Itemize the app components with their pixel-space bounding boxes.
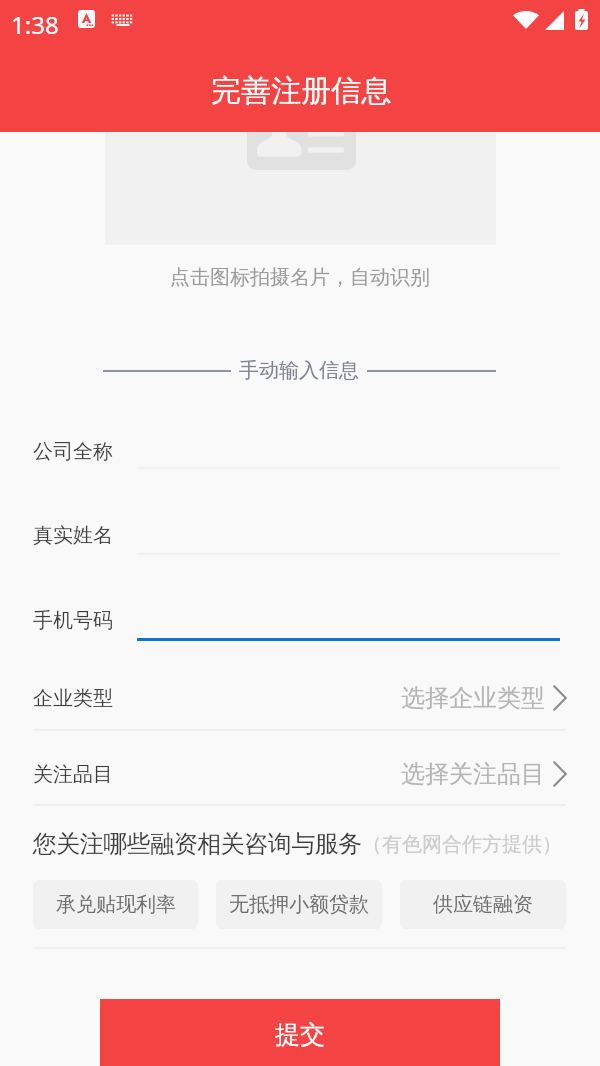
staticText: 承兑贴现利率 bbox=[56, 892, 176, 917]
other: WiFi bbox=[513, 10, 539, 29]
staticText: 完善注册信息 bbox=[211, 72, 391, 110]
other: Keyboard bbox=[111, 14, 134, 26]
button[interactable]: 提交 bbox=[100, 999, 500, 1066]
staticText: 公司全称 bbox=[33, 439, 113, 464]
button[interactable]: 拍摄名片 bbox=[105, 100, 496, 245]
button[interactable]: 企业类型 bbox=[0, 663, 600, 733]
staticText: 您关注哪些融资相关咨询与服务 bbox=[33, 829, 362, 859]
staticText: 选择关注品目 bbox=[401, 759, 545, 789]
staticText: 选择企业类型 bbox=[401, 683, 545, 713]
button[interactable]: 关注品目 bbox=[0, 739, 600, 809]
button[interactable]: 供应链融资 bbox=[400, 880, 566, 929]
staticText: （有色网合作方提供） bbox=[362, 832, 562, 857]
staticText: 点击图标拍摄名片，自动识别 bbox=[170, 265, 430, 290]
staticText: 手机号码 bbox=[33, 608, 113, 633]
button[interactable]: 公司全称 bbox=[33, 425, 560, 477]
staticText: 提交 bbox=[275, 1019, 325, 1050]
button[interactable]: 手机号码 bbox=[33, 596, 560, 648]
other: Input method bbox=[78, 10, 95, 28]
staticText: 手动输入信息 bbox=[239, 358, 359, 383]
other: Battery charging bbox=[575, 9, 588, 30]
button[interactable]: 承兑贴现利率 bbox=[33, 880, 198, 929]
staticText: 1:38 bbox=[11, 8, 59, 41]
other: Signal bbox=[545, 11, 564, 30]
staticText: 关注品目 bbox=[33, 762, 113, 787]
staticText: 供应链融资 bbox=[433, 892, 533, 917]
staticText: 无抵押小额贷款 bbox=[229, 892, 369, 917]
staticText: 企业类型 bbox=[33, 686, 113, 711]
staticText: 真实姓名 bbox=[33, 523, 113, 548]
button[interactable]: 真实姓名 bbox=[33, 511, 560, 563]
button[interactable]: 无抵押小额贷款 bbox=[216, 880, 382, 929]
